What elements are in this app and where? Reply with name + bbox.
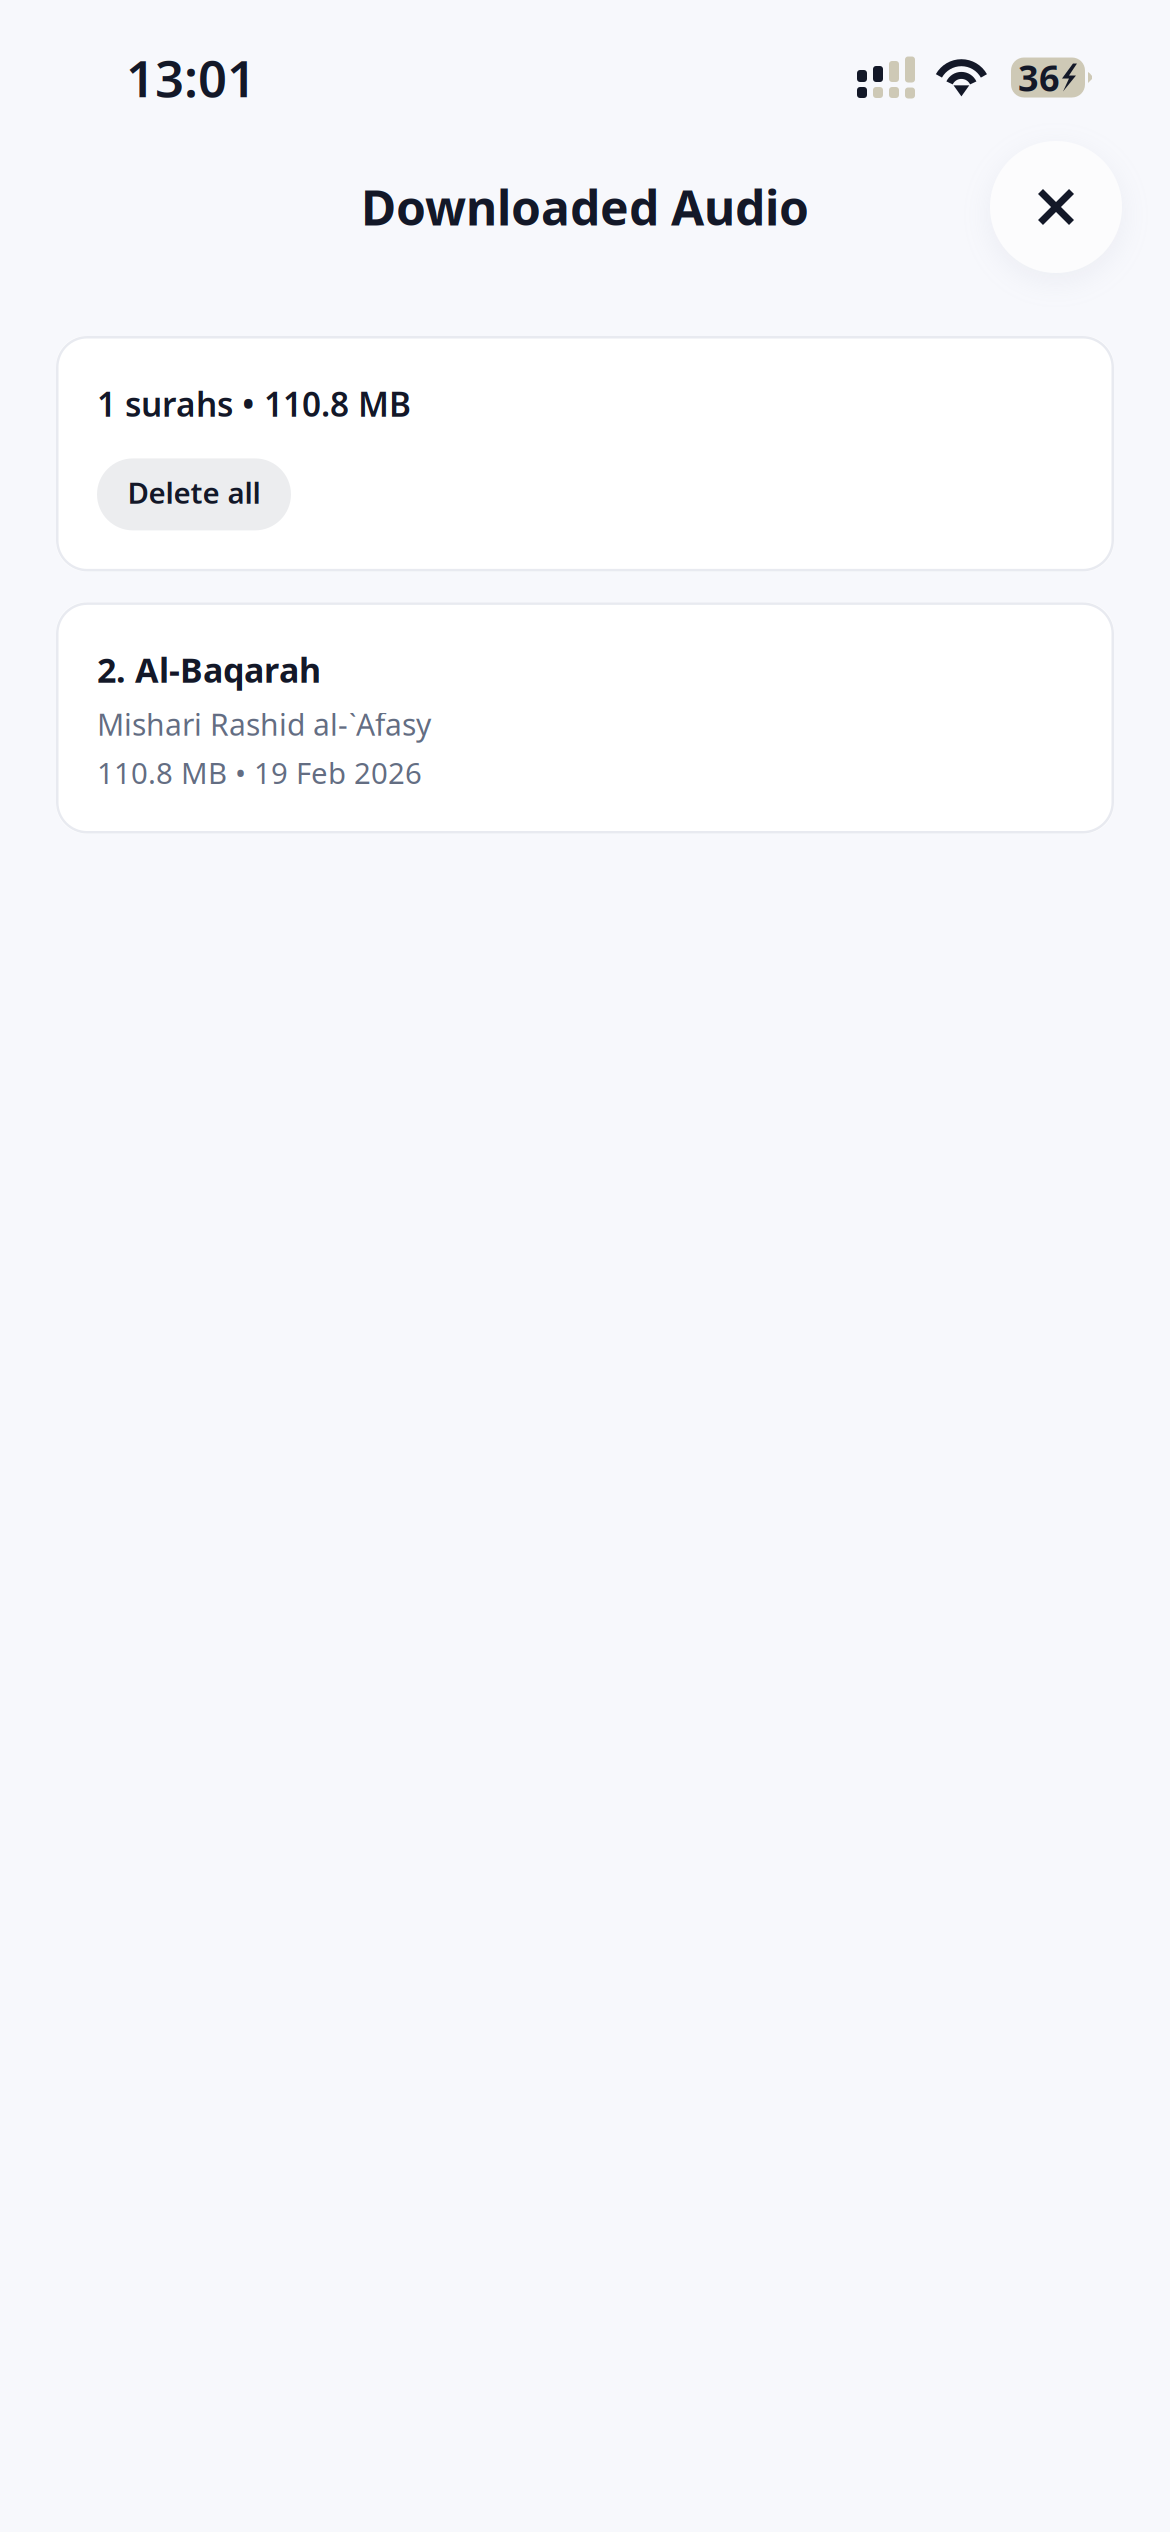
staticText: Downloaded Audio bbox=[361, 174, 809, 240]
button[interactable]: Close bbox=[990, 141, 1122, 273]
staticText: Mishari Rashid al-`Afasy bbox=[97, 704, 431, 745]
button[interactable]: 2. Al-Baqarah bbox=[56, 602, 1114, 833]
staticText: 110.8 MB • 19 Feb 2026 bbox=[97, 753, 422, 793]
button[interactable]: Delete all bbox=[97, 458, 291, 530]
staticText: Delete all bbox=[127, 472, 260, 512]
staticText: 13:01 bbox=[126, 43, 256, 112]
staticText: 1 surahs • 110.8 MB bbox=[97, 381, 411, 426]
staticText: 2. Al-Baqarah bbox=[97, 646, 321, 693]
staticText: 36 bbox=[1018, 53, 1060, 102]
